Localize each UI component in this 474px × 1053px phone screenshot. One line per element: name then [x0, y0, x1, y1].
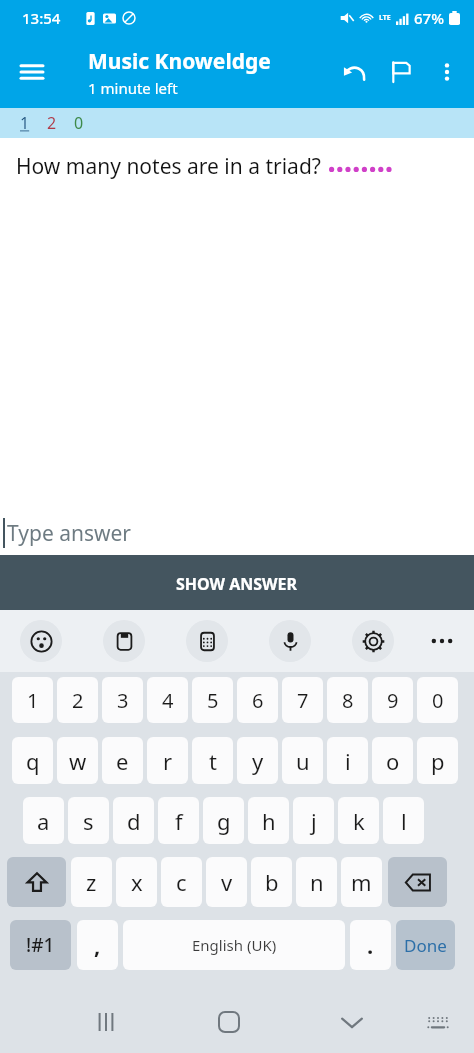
button[interactable]: English (UK)	[123, 920, 345, 970]
button[interactable]: y	[237, 737, 278, 784]
button[interactable]: 4	[147, 677, 188, 723]
staticText: k	[353, 806, 365, 836]
staticText: !#1	[26, 932, 55, 958]
staticText: e	[116, 746, 129, 776]
button[interactable]: !#1	[10, 920, 71, 970]
button[interactable]: 5	[192, 677, 233, 723]
button[interactable]: SHOW ANSWER	[0, 557, 474, 610]
button[interactable]: c	[161, 857, 202, 907]
button[interactable]: g	[203, 797, 244, 844]
button[interactable]: l	[383, 797, 424, 844]
button[interactable]: i	[327, 737, 368, 784]
staticText: ,	[94, 930, 101, 960]
staticText: r	[163, 746, 173, 776]
button[interactable]: Done	[396, 920, 455, 970]
button[interactable]: 1	[20, 112, 30, 134]
button[interactable]: Keyboard	[412, 996, 464, 1048]
button[interactable]: j	[293, 797, 334, 844]
button[interactable]: Settings	[352, 620, 394, 662]
button[interactable]: Voice input	[269, 620, 311, 662]
staticText: 9	[387, 687, 399, 714]
button[interactable]: 1	[12, 677, 53, 723]
button[interactable]: k	[338, 797, 379, 844]
staticText: t	[209, 746, 217, 776]
staticText: .	[367, 930, 374, 960]
staticText: f	[175, 806, 183, 836]
button[interactable]: 3	[102, 677, 143, 723]
staticText: w	[69, 746, 87, 776]
staticText: h	[262, 806, 276, 836]
button[interactable]: 0	[74, 112, 84, 134]
staticText: 8	[342, 687, 354, 714]
button[interactable]: q	[12, 737, 53, 784]
button[interactable]: Undo	[332, 49, 378, 95]
staticText: y	[252, 746, 264, 776]
staticText: n	[310, 867, 324, 897]
button[interactable]: e	[102, 737, 143, 784]
button[interactable]: s	[68, 797, 109, 844]
staticText: 67%	[414, 8, 444, 28]
button[interactable]: ,	[77, 920, 118, 970]
staticText: SHOW ANSWER	[176, 573, 298, 595]
button[interactable]: h	[248, 797, 289, 844]
button[interactable]: Recents	[80, 996, 132, 1048]
button[interactable]: b	[251, 857, 292, 907]
staticText: 7	[297, 687, 309, 714]
button[interactable]: x	[116, 857, 157, 907]
staticText: m	[351, 867, 372, 897]
staticText: x	[131, 867, 143, 897]
staticText: z	[86, 867, 97, 897]
button[interactable]: 0	[417, 677, 458, 723]
staticText: u	[296, 746, 310, 776]
button[interactable]: Emoji	[20, 620, 62, 662]
staticText: 1	[27, 687, 39, 714]
button[interactable]: Backspace	[388, 857, 447, 907]
button[interactable]: 9	[372, 677, 413, 723]
button[interactable]: 2	[57, 677, 98, 723]
staticText: j	[311, 806, 317, 836]
button[interactable]: p	[417, 737, 458, 784]
staticText: d	[127, 806, 141, 836]
button[interactable]: 8	[327, 677, 368, 723]
staticText: Music Knoweldge	[88, 47, 271, 76]
staticText: p	[431, 746, 445, 776]
button[interactable]: r	[147, 737, 188, 784]
staticText: a	[37, 806, 50, 836]
button[interactable]: 7	[282, 677, 323, 723]
button[interactable]: o	[372, 737, 413, 784]
button[interactable]: Keyboard modes	[186, 620, 228, 662]
button[interactable]: z	[71, 857, 112, 907]
staticText: 4	[162, 687, 174, 714]
button[interactable]: Shift	[7, 857, 66, 907]
staticText: How many notes are in a triad?	[16, 152, 321, 181]
button[interactable]: More options	[424, 49, 470, 95]
button[interactable]: Clipboard	[103, 620, 145, 662]
staticText: b	[265, 867, 279, 897]
button[interactable]: Flag	[378, 49, 424, 95]
button[interactable]: m	[341, 857, 382, 907]
button[interactable]: n	[296, 857, 337, 907]
button[interactable]: f	[158, 797, 199, 844]
staticText: Done	[404, 934, 447, 957]
staticText: 6	[252, 687, 264, 714]
button[interactable]: 6	[237, 677, 278, 723]
button[interactable]: t	[192, 737, 233, 784]
staticText: English (UK)	[192, 935, 277, 955]
button[interactable]: Menu	[8, 48, 56, 96]
button[interactable]: More	[421, 620, 463, 662]
button[interactable]: u	[282, 737, 323, 784]
button[interactable]: 2	[47, 112, 57, 134]
staticText: g	[217, 806, 231, 836]
staticText: v	[221, 867, 233, 897]
button[interactable]: d	[113, 797, 154, 844]
button[interactable]: Hide keyboard	[326, 996, 378, 1048]
button[interactable]: Home	[203, 996, 255, 1048]
button[interactable]: v	[206, 857, 247, 907]
staticText: c	[176, 867, 187, 897]
button[interactable]: a	[23, 797, 64, 844]
staticText: l	[401, 806, 407, 836]
staticText: 13:54	[22, 8, 61, 28]
button[interactable]: .	[350, 920, 391, 970]
button[interactable]: Type answer	[7, 519, 132, 548]
button[interactable]: w	[57, 737, 98, 784]
